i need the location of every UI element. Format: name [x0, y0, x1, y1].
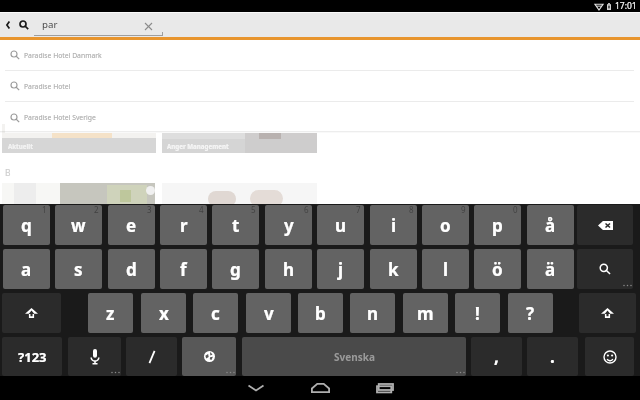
- staticText: å: [545, 214, 556, 237]
- button[interactable]: Shift: [2, 293, 61, 333]
- staticText: 2: [94, 205, 99, 215]
- button[interactable]: b: [298, 293, 343, 333]
- staticText: Svenska: [334, 350, 375, 364]
- button[interactable]: [2, 183, 155, 204]
- staticText: 3: [147, 205, 152, 215]
- button[interactable]: /: [126, 337, 177, 376]
- button[interactable]: .: [527, 337, 578, 376]
- staticText: f: [180, 258, 187, 281]
- staticText: Paradise Hotel Danmark: [24, 51, 102, 60]
- button[interactable]: i: [370, 205, 417, 245]
- button[interactable]: Voice input: [68, 337, 121, 376]
- staticText: c: [211, 302, 220, 325]
- staticText: k: [388, 258, 399, 281]
- button[interactable]: k: [370, 249, 417, 289]
- button[interactable]: Search: [577, 249, 633, 289]
- button[interactable]: ,: [471, 337, 522, 376]
- button[interactable]: Shift: [579, 293, 636, 333]
- button[interactable]: Hide keyboard: [224, 376, 288, 400]
- button[interactable]: ?: [508, 293, 553, 333]
- button[interactable]: Backspace: [577, 205, 633, 245]
- button[interactable]: d: [108, 249, 155, 289]
- staticText: Paradise Hotel Sverige: [24, 113, 96, 122]
- staticText: i: [391, 214, 397, 237]
- button[interactable]: m: [403, 293, 448, 333]
- button[interactable]: a: [3, 249, 50, 289]
- button[interactable]: Emoji: [585, 337, 634, 376]
- staticText: ä: [545, 258, 556, 281]
- button[interactable]: Search: [14, 12, 34, 37]
- staticText: Aktuellt: [8, 142, 33, 150]
- button[interactable]: f: [160, 249, 207, 289]
- button[interactable]: Back: [0, 12, 16, 37]
- button[interactable]: s: [55, 249, 102, 289]
- staticText: s: [74, 258, 83, 281]
- button[interactable]: v: [246, 293, 291, 333]
- staticText: .: [550, 345, 555, 368]
- button[interactable]: n: [350, 293, 395, 333]
- staticText: ?123: [18, 348, 47, 366]
- button[interactable]: ?123: [2, 337, 62, 376]
- button[interactable]: Anger Management: [162, 125, 317, 153]
- staticText: n: [367, 302, 379, 325]
- staticText: 5: [251, 205, 256, 215]
- button[interactable]: Aktuellt: [2, 124, 156, 153]
- button[interactable]: w: [55, 205, 102, 245]
- button[interactable]: g: [212, 249, 259, 289]
- button[interactable]: ä: [527, 249, 574, 289]
- button[interactable]: o: [422, 205, 469, 245]
- button[interactable]: l: [422, 249, 469, 289]
- staticText: y: [284, 214, 294, 237]
- button[interactable]: Paradise Hotel: [5, 71, 634, 101]
- button[interactable]: p: [474, 205, 521, 245]
- button[interactable]: t: [212, 205, 259, 245]
- staticText: 8: [409, 205, 414, 215]
- staticText: ö: [492, 258, 503, 281]
- staticText: d: [126, 258, 137, 281]
- button[interactable]: Paradise Hotel Sverige: [5, 102, 634, 133]
- staticText: 9: [461, 205, 466, 215]
- button[interactable]: c: [193, 293, 238, 333]
- staticText: par: [42, 18, 58, 31]
- button[interactable]: !: [455, 293, 500, 333]
- staticText: u: [335, 214, 347, 237]
- button[interactable]: ö: [474, 249, 521, 289]
- staticText: Paradise Hotel: [24, 82, 71, 91]
- button[interactable]: Clear search: [139, 17, 157, 35]
- button[interactable]: å: [527, 205, 574, 245]
- button[interactable]: h: [265, 249, 312, 289]
- staticText: ?: [526, 302, 535, 325]
- button[interactable]: Language: [182, 337, 236, 376]
- staticText: r: [180, 214, 188, 237]
- button[interactable]: [162, 183, 317, 204]
- staticText: 7: [356, 205, 361, 215]
- staticText: 4: [199, 205, 204, 215]
- button[interactable]: r: [160, 205, 207, 245]
- button[interactable]: z: [88, 293, 133, 333]
- button[interactable]: Recent apps: [352, 376, 416, 400]
- staticText: z: [106, 302, 115, 325]
- button[interactable]: u: [317, 205, 364, 245]
- staticText: b: [315, 302, 326, 325]
- button[interactable]: e: [108, 205, 155, 245]
- staticText: o: [440, 214, 451, 237]
- button[interactable]: Paradise Hotel Danmark: [5, 40, 634, 70]
- staticText: B: [5, 167, 11, 179]
- staticText: 0: [513, 205, 518, 215]
- button[interactable]: q: [3, 205, 50, 245]
- staticText: w: [71, 214, 86, 237]
- staticText: q: [21, 214, 32, 237]
- staticText: !: [475, 302, 480, 325]
- staticText: 17:01: [615, 0, 637, 12]
- staticText: x: [159, 302, 169, 325]
- staticText: Anger Management: [167, 142, 229, 150]
- button[interactable]: Svenska: [242, 337, 466, 376]
- staticText: ,: [494, 345, 499, 368]
- button[interactable]: y: [265, 205, 312, 245]
- button[interactable]: j: [317, 249, 364, 289]
- button[interactable]: x: [141, 293, 186, 333]
- staticText: g: [230, 258, 241, 281]
- staticText: a: [21, 258, 32, 281]
- button[interactable]: Home: [288, 376, 352, 400]
- staticText: 6: [304, 205, 309, 215]
